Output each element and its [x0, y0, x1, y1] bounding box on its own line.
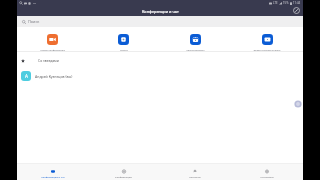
- button[interactable]: Со звездами: [17, 52, 303, 69]
- staticText: 11:44: [293, 1, 301, 5]
- button[interactable]: Новая конференция: [17, 27, 88, 51]
- button[interactable]: Запланировать: [159, 27, 231, 51]
- button[interactable]: Контакты: [159, 164, 231, 180]
- staticText: Со звездами: [38, 58, 59, 63]
- staticText: Конференции: [115, 175, 132, 178]
- staticText: Войти: [120, 48, 128, 51]
- staticText: Настройки: [260, 175, 274, 178]
- staticText: Поиск: [28, 19, 40, 24]
- staticText: LTE: [273, 1, 278, 5]
- staticText: Конференции и чат: [142, 9, 179, 14]
- button[interactable]: Recording indicator: [294, 100, 302, 108]
- staticText: Новая конференция: [40, 48, 65, 51]
- staticText: Андрей Кузнецов (вы): [35, 74, 73, 79]
- button[interactable]: Конференции: [88, 164, 159, 180]
- button[interactable]: New chat: [292, 6, 300, 14]
- button[interactable]: Конференции и чат: [17, 164, 88, 180]
- staticText: Запланировать: [186, 48, 205, 51]
- staticText: А: [25, 73, 28, 79]
- button[interactable]: А: [17, 69, 303, 83]
- staticText: Конференции и чат: [41, 175, 65, 178]
- button[interactable]: Демонстрация экрана: [231, 27, 303, 51]
- staticText: 15%: [283, 1, 289, 5]
- button[interactable]: Настройки: [231, 164, 303, 180]
- button[interactable]: Войти: [88, 27, 159, 51]
- staticText: Демонстрация экрана: [253, 48, 281, 51]
- staticText: Контакты: [189, 175, 201, 178]
